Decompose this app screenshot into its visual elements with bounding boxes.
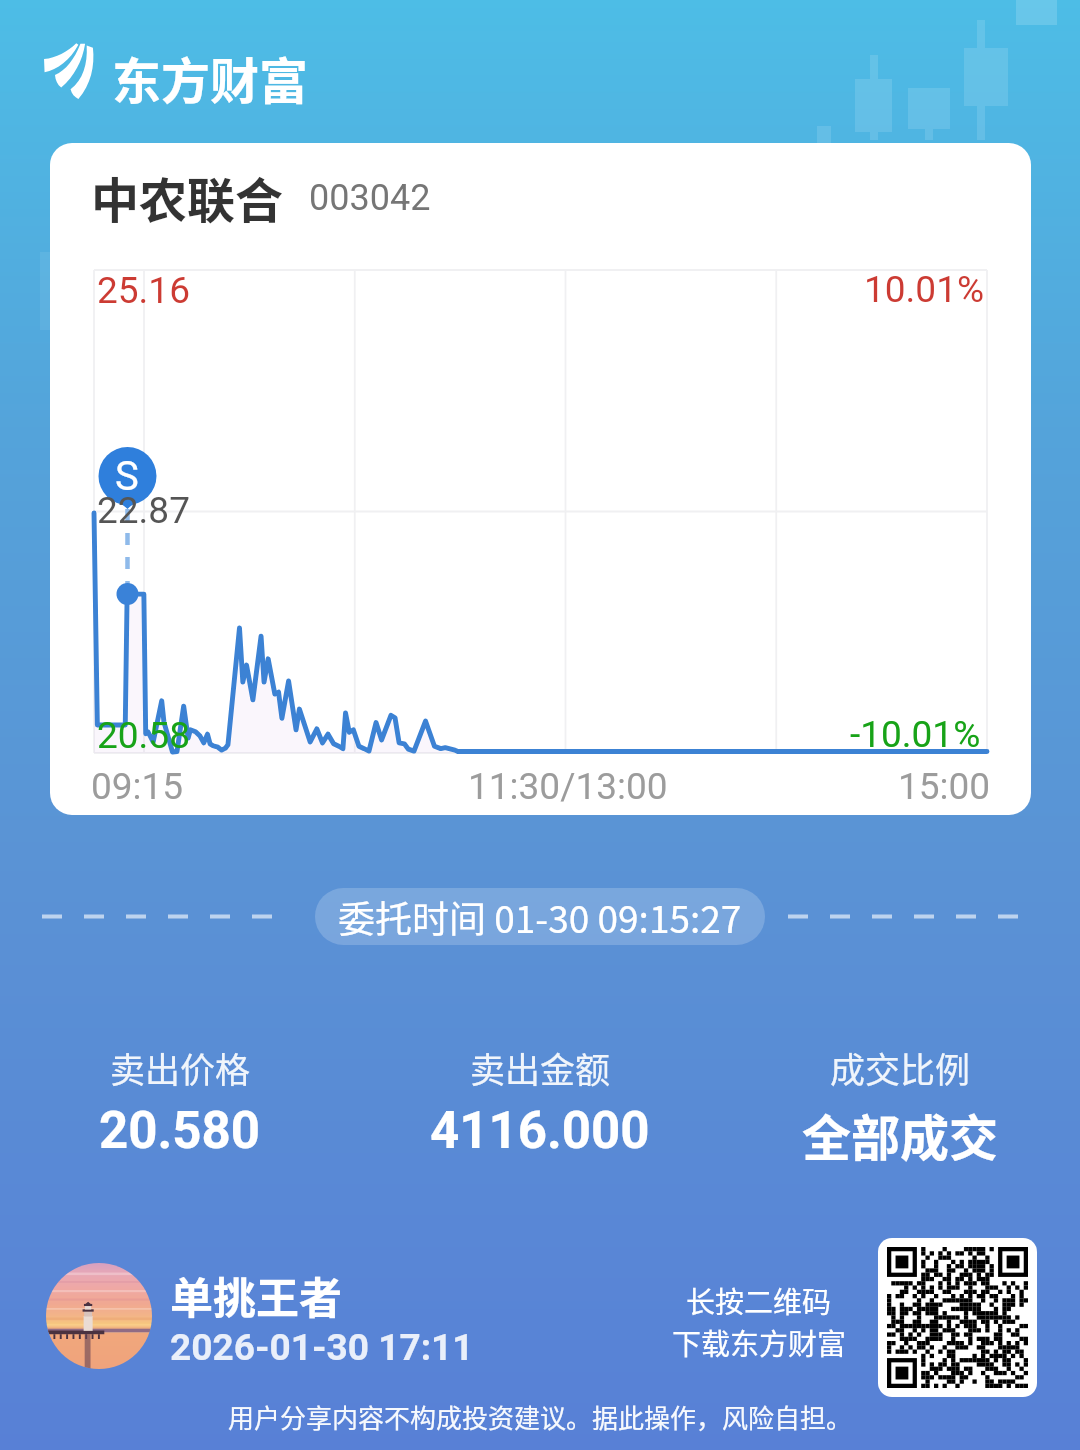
staticText: 20.580 [99, 1101, 261, 1161]
button[interactable]: 卖出价格 [0, 1042, 360, 1161]
staticText: 卖出金额 [470, 1042, 611, 1093]
staticText: 20.58 [97, 714, 190, 757]
staticText: 卖出价格 [110, 1042, 251, 1093]
button[interactable]: 中农联合 [50, 143, 1031, 815]
staticText: -10.01% [850, 713, 981, 756]
staticText: 委托时间 01-30 09:15:27 [338, 890, 742, 944]
button[interactable]: 委托时间 01-30 09:15:27 [315, 888, 765, 945]
staticText: S [115, 453, 139, 500]
button[interactable]: 二维码 [878, 1238, 1037, 1397]
staticText: 用户分享内容不构成投资建议。据此操作，风险自担。 [0, 1398, 1080, 1436]
staticText: 中农联合 [91, 162, 284, 232]
staticText: 22.87 [97, 489, 190, 532]
other: 东方财富 [43, 42, 95, 99]
staticText: 下载东方财富 [672, 1321, 847, 1363]
button[interactable]: 成交比例 [720, 1042, 1080, 1170]
staticText: 003042 [309, 177, 431, 219]
staticText: 2026-01-30 17:11 [170, 1326, 474, 1369]
staticText: 09:15 [91, 765, 184, 808]
staticText: 11:30/13:00 [468, 765, 668, 808]
button[interactable]: 用户头像 [46, 1263, 152, 1369]
staticText: 25.16 [97, 269, 190, 312]
staticText: 单挑王者 [170, 1264, 342, 1326]
staticText: 长按二维码 [686, 1279, 832, 1321]
button[interactable]: 卖出金额 [360, 1042, 720, 1161]
staticText: 成交比例 [830, 1042, 971, 1093]
staticText: 全部成交 [802, 1099, 999, 1170]
staticText: 15:00 [898, 765, 991, 808]
staticText: 4116.000 [430, 1101, 650, 1161]
staticText: 10.01% [864, 268, 985, 311]
button[interactable]: 单挑王者 [170, 1264, 474, 1369]
staticText: 东方财富 [112, 42, 309, 113]
